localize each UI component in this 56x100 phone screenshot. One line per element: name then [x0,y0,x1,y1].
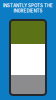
staticText: INSTANTLY SPOTS THE [3,3,53,8]
staticText: INGREDIENTS [13,8,42,13]
